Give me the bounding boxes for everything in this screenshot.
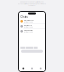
- button[interactable]: Tab 3: [36, 66, 45, 71]
- staticText: you work: [28, 4, 35, 6]
- staticText: last message: [24, 31, 33, 33]
- button[interactable]: Design crit: [19, 24, 45, 29]
- staticText: last message: [24, 26, 33, 28]
- button[interactable]: Tab 2: [28, 66, 36, 71]
- button[interactable]: Morning sync: [19, 19, 45, 24]
- staticText: Morning sync: [24, 19, 34, 21]
- button[interactable]: Tab 1: [19, 66, 28, 71]
- staticText: last message: [24, 21, 33, 23]
- button[interactable]: Weekly notes: [19, 29, 45, 34]
- staticText: across all of your devices, everywhere: [18, 3, 46, 5]
- staticText: Weekly notes: [24, 29, 33, 31]
- staticText: Chats: [20, 15, 27, 19]
- staticText: Design crit: [24, 24, 31, 26]
